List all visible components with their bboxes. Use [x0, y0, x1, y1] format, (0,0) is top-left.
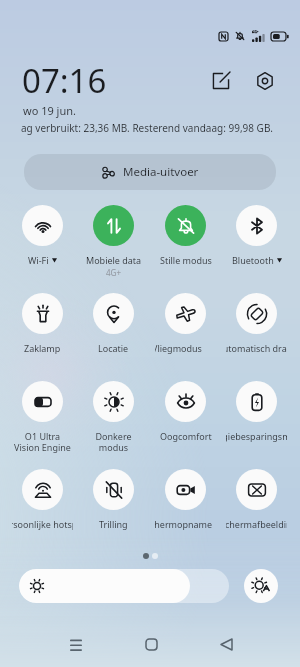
button[interactable]: [19, 569, 229, 603]
staticText: Oogcomfort: [160, 430, 212, 442]
button[interactable]: Mobiele data: [78, 205, 149, 278]
staticText: ag verbruikt: 23,36 MB. Resterend vandaa…: [21, 121, 273, 135]
button[interactable]: Zaklamp: [7, 293, 78, 354]
button[interactable]: Automatisch draaien: [221, 293, 292, 354]
staticText: Vliegmodus: [155, 342, 202, 354]
staticText: Stille modus: [160, 254, 212, 266]
button[interactable]: Vliegmodus: [150, 293, 221, 354]
staticText: Energiebesparingsmodus: [226, 430, 287, 442]
button[interactable]: Terug: [206, 624, 246, 664]
button[interactable]: Trilling: [78, 469, 149, 530]
button[interactable]: Schermopname: [150, 469, 221, 530]
staticText: Wi-Fi: [28, 254, 49, 266]
button[interactable]: Bewerken: [206, 66, 236, 96]
button[interactable]: Start: [131, 624, 171, 664]
button[interactable]: Donkere modus: [78, 381, 149, 453]
button[interactable]: Recente apps: [56, 624, 96, 664]
button[interactable]: Energiebesparingsmodus: [221, 381, 292, 442]
staticText: Donkere modus: [83, 430, 144, 453]
staticText: Locatie: [98, 342, 129, 354]
staticText: Schermafbeelding: [226, 518, 287, 530]
staticText: 4G+: [106, 267, 121, 278]
button[interactable]: Persoonlijke hotspot: [7, 469, 78, 530]
staticText: 07:16: [22, 58, 107, 103]
button[interactable]: Automatische helderheid: [244, 569, 278, 603]
staticText: Trilling: [99, 518, 128, 530]
staticText: O1 Ultra Vision Engine: [12, 430, 73, 453]
button[interactable]: Schermafbeelding: [221, 469, 292, 530]
button[interactable]: O1 Ultra Vision Engine: [7, 381, 78, 453]
staticText: wo 19 jun.: [23, 103, 76, 118]
staticText: Media-uitvoer: [123, 164, 199, 180]
button[interactable]: Instellingen: [250, 66, 280, 96]
staticText: Zaklamp: [24, 342, 61, 354]
staticText: Automatisch draaien: [226, 342, 287, 354]
button[interactable]: Locatie: [78, 293, 149, 354]
button[interactable]: Oogcomfort: [150, 381, 221, 442]
staticText: Bluetooth: [232, 254, 274, 266]
button[interactable]: Stille modus: [150, 205, 221, 266]
staticText: Mobiele data: [86, 254, 142, 266]
button[interactable]: Wi-Fi: [7, 205, 78, 266]
staticText: Schermopname: [155, 518, 213, 530]
staticText: Persoonlijke hotspot: [12, 518, 73, 530]
button[interactable]: Bluetooth: [221, 205, 292, 266]
button[interactable]: Media-uitvoer: [24, 154, 276, 190]
